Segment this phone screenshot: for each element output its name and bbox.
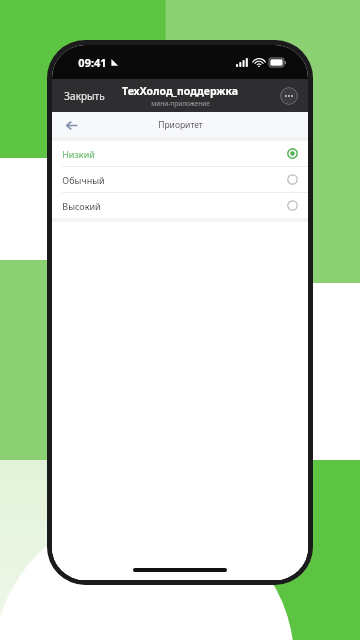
button[interactable]: Обычный bbox=[52, 167, 308, 192]
button[interactable]: Низкий bbox=[52, 141, 308, 166]
staticText: ТехХолод_поддержка bbox=[122, 84, 238, 98]
button[interactable]: Высокий bbox=[52, 193, 308, 218]
staticText: Закрыть bbox=[64, 89, 105, 103]
button[interactable]: Закрыть bbox=[52, 83, 113, 109]
button[interactable]: Назад bbox=[60, 114, 82, 136]
staticText: мини-приложение bbox=[151, 99, 210, 108]
button[interactable]: Дополнительно bbox=[280, 87, 298, 105]
staticText: Обычный bbox=[62, 174, 105, 186]
staticText: Приоритет bbox=[158, 119, 203, 131]
staticText: Высокий bbox=[62, 200, 101, 212]
staticText: 09:41 bbox=[78, 55, 107, 70]
staticText: Низкий bbox=[62, 148, 95, 160]
